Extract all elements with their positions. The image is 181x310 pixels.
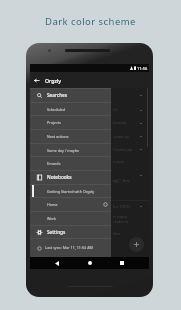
staticText: k-menu [113, 120, 127, 125]
button[interactable]: Next actions [30, 129, 111, 143]
button[interactable]: Back [51, 257, 63, 269]
staticText: 11:56 [137, 66, 148, 71]
staticText: cludes in [113, 219, 129, 224]
button[interactable]: Projects [30, 115, 111, 129]
button[interactable]: Home [30, 197, 111, 211]
staticText: Settings [47, 229, 66, 235]
staticText: Notebooks [47, 174, 72, 180]
button[interactable]: Settings [30, 225, 111, 239]
button[interactable]: Navigate up [30, 72, 43, 88]
button[interactable]: Last sync: Mar 11, 11:54 AM [30, 238, 111, 257]
staticText: Next actions [47, 134, 69, 139]
button[interactable]: Errands [30, 156, 111, 170]
staticText: Searches [47, 92, 68, 98]
button[interactable]: Work [30, 211, 111, 225]
staticText: Dark color scheme [45, 15, 136, 28]
staticText: Work [47, 216, 57, 221]
button[interactable]: Home [84, 257, 96, 269]
staticText: -notes by [113, 134, 129, 139]
button[interactable]: Searches [30, 88, 111, 102]
staticText: Projects [47, 120, 61, 125]
staticText: Orgzly [45, 77, 62, 84]
staticText: tline [113, 231, 121, 236]
button[interactable]: Recent apps [116, 257, 128, 269]
staticText: rt status [113, 214, 128, 219]
staticText: Errands [47, 161, 61, 166]
button[interactable]: Notebooks [30, 170, 111, 184]
staticText: t it [113, 107, 118, 112]
button[interactable]: Getting Started with Orgzly [30, 184, 111, 198]
staticText: Scheduled [47, 107, 65, 112]
staticText: h a TODO [113, 204, 130, 209]
staticText: ag] ", this [113, 178, 130, 183]
button[interactable]: Scheduled [30, 102, 111, 116]
button[interactable]: New note [129, 237, 144, 252]
staticText: e your [113, 159, 124, 164]
staticText: Last sync: Mar 11, 11:54 AM [45, 245, 93, 250]
staticText: f levels you [113, 147, 133, 152]
staticText: Some day / maybe [47, 148, 79, 153]
staticText: Getting Started with Orgzly [47, 189, 95, 194]
button[interactable]: Some day / maybe [30, 143, 111, 157]
staticText: Home [47, 202, 58, 207]
